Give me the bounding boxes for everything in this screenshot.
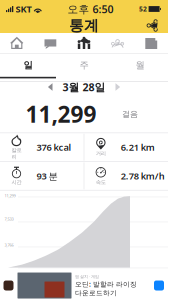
staticText: 93 분 [36, 170, 57, 182]
staticText: 걸음 [122, 109, 138, 119]
button[interactable]: 랭킹 [101, 33, 134, 53]
staticText: 오후 6:50 [68, 2, 114, 16]
button[interactable]: 다음 날짜 [111, 80, 124, 94]
staticText: 11,299 [25, 99, 96, 129]
staticText: 일 [23, 59, 32, 71]
staticText: 52 [139, 5, 147, 13]
staticText: 376 kcal [36, 141, 71, 153]
staticText: 칼로리 [11, 147, 21, 160]
button[interactable]: 채팅 [34, 33, 67, 53]
staticText: 시간 [11, 179, 21, 185]
button[interactable]: 홈 [0, 33, 34, 53]
staticText: 거리 [96, 150, 106, 157]
button[interactable]: 월 [112, 54, 168, 77]
staticText: 통계 [69, 16, 99, 34]
button[interactable]: 앱 설치 · 게임 [0, 272, 168, 299]
button[interactable]: 소식 [134, 33, 168, 53]
staticText: 오딘: 발할라 라이징 [75, 280, 137, 288]
staticText: 3월 28일 [62, 80, 105, 94]
staticText: 6.21 km [121, 141, 155, 153]
staticText: 다운로드하기 [75, 289, 117, 297]
button[interactable]: 이전 날짜 [44, 80, 56, 94]
staticText: SKT [15, 3, 31, 15]
staticText: 속도 [96, 179, 106, 185]
staticText: 주 [79, 59, 88, 71]
button[interactable]: 일 [0, 54, 56, 77]
staticText: 7,533 [4, 216, 13, 222]
button[interactable]: 공유 [142, 18, 162, 33]
staticText: 2.78 km/h [121, 170, 165, 182]
button[interactable]: 주 [56, 54, 112, 77]
staticText: 월 [135, 59, 144, 71]
staticText: 3,766 [4, 242, 13, 247]
staticText: 앱 설치 · 게임 [75, 274, 99, 279]
button[interactable]: 통계 [67, 33, 101, 53]
staticText: 11,299 [4, 193, 15, 198]
